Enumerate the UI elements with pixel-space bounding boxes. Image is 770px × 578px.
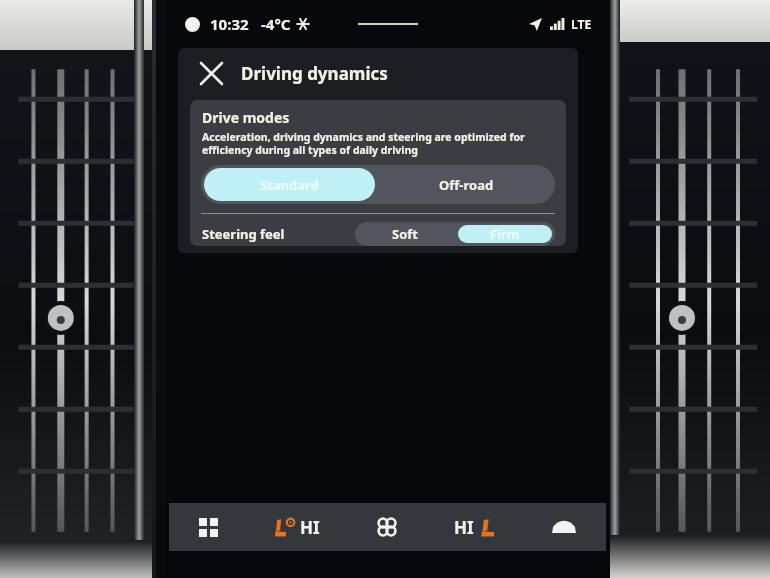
- staticText: -4°C: [261, 14, 291, 34]
- staticText: Standard: [260, 176, 319, 194]
- button[interactable]: Climate fan: [369, 509, 405, 545]
- staticText: 10:32: [210, 14, 249, 34]
- button[interactable]: Passenger seat heater high: [454, 516, 495, 539]
- staticText: Drive modes: [202, 108, 290, 127]
- button[interactable]: Close: [194, 56, 228, 90]
- button[interactable]: Standard: [204, 168, 375, 201]
- staticText: Driving dynamics: [241, 62, 388, 85]
- staticText: LTE: [571, 16, 592, 32]
- staticText: Acceleration, driving dynamics and steer…: [202, 130, 552, 157]
- button[interactable]: Soft: [358, 225, 452, 243]
- button[interactable]: Firm: [458, 225, 552, 243]
- staticText: Steering feel: [202, 225, 285, 243]
- staticText: Off-road: [439, 176, 494, 194]
- button[interactable]: Car status: [544, 507, 584, 547]
- button[interactable]: Apps: [191, 510, 225, 544]
- staticText: HI: [300, 516, 320, 539]
- staticText: Soft: [392, 225, 418, 243]
- button[interactable]: Driver seat heater high: [273, 516, 320, 539]
- staticText: HI: [454, 516, 474, 539]
- staticText: Firm: [490, 225, 520, 243]
- button[interactable]: Off-road: [381, 168, 552, 201]
